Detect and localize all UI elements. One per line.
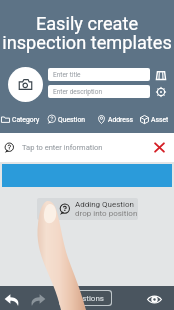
button[interactable]: Enter description — [48, 85, 150, 98]
button[interactable]: Preview — [145, 290, 163, 308]
staticText: Enter description — [53, 88, 102, 96]
staticText: Enter title — [53, 71, 81, 79]
button[interactable]: Settings — [154, 85, 168, 99]
button[interactable]: Asset — [140, 115, 169, 124]
staticText: Asset — [151, 116, 169, 124]
button[interactable]: Add photo — [8, 67, 43, 102]
staticText: Category — [12, 116, 40, 124]
staticText: Adding Question — [75, 200, 134, 209]
button[interactable]: Adding Question — [37, 198, 138, 220]
staticText: Question — [58, 116, 86, 124]
button[interactable]: Category — [1, 115, 40, 124]
button[interactable]: Address — [97, 115, 133, 124]
button[interactable]: Enter title — [48, 68, 150, 81]
button[interactable]: Question — [47, 115, 86, 124]
staticText: Questions — [68, 294, 104, 303]
staticText: drop into position — [75, 209, 138, 218]
staticText: Easily create inspection templates — [0, 13, 174, 53]
button[interactable]: Redo — [29, 291, 47, 309]
button[interactable]: Undo — [3, 291, 21, 309]
button[interactable]: Delete — [152, 140, 167, 155]
staticText: Tap to enter information — [22, 143, 103, 152]
button[interactable]: Questions — [60, 291, 111, 305]
staticText: Address — [108, 116, 133, 124]
button[interactable]: Briefcase — [154, 68, 168, 82]
